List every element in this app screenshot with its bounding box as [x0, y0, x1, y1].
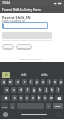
- button[interactable]: ,: [10, 103, 15, 109]
- button[interactable]: Backspace: [55, 95, 63, 101]
- button[interactable]: d: [18, 87, 23, 93]
- staticText: powered by company: [19, 58, 42, 61]
- staticText: a: [6, 88, 8, 92]
- staticText: 10:24: [2, 1, 11, 5]
- button[interactable]: y: [35, 79, 39, 85]
- button[interactable]: q: [1, 79, 6, 85]
- staticText: e: [17, 80, 19, 84]
- button[interactable]: sh: [2, 72, 10, 78]
- button[interactable]: shift in: [2, 44, 14, 50]
- staticText: c: [26, 96, 28, 100]
- staticText: z: [14, 96, 16, 100]
- staticText: ,: [12, 104, 13, 108]
- staticText: b: [38, 96, 40, 100]
- button[interactable]: j: [44, 87, 48, 93]
- staticText: s: [13, 88, 15, 92]
- staticText: n: [44, 96, 46, 100]
- staticText: y: [36, 80, 38, 84]
- button[interactable]: [2, 22, 48, 29]
- button[interactable]: h: [38, 87, 42, 93]
- button[interactable]: z: [12, 95, 17, 101]
- staticText: h: [39, 88, 41, 92]
- button[interactable]: e: [15, 79, 20, 85]
- staticText: update shift: [17, 46, 32, 49]
- button[interactable]: shift: [20, 72, 27, 78]
- staticText: j: [46, 88, 47, 92]
- staticText: shift in: [4, 46, 12, 49]
- button[interactable]: k: [50, 87, 54, 93]
- button[interactable]: Shift: [1, 95, 10, 101]
- staticText: shifts: [41, 73, 48, 77]
- staticText: r: [24, 80, 26, 84]
- button[interactable]: r: [22, 79, 27, 85]
- button[interactable]: a: [4, 87, 9, 93]
- staticText: x: [20, 96, 22, 100]
- button[interactable]: Home: [3, 112, 8, 117]
- button[interactable]: .: [46, 103, 51, 109]
- button[interactable]: v: [31, 95, 35, 101]
- button[interactable]: n: [43, 95, 47, 101]
- staticText: t: [30, 80, 32, 84]
- button[interactable]: Enter: [53, 103, 63, 109]
- staticText: l: [58, 88, 59, 92]
- button[interactable]: p: [59, 79, 63, 85]
- button[interactable]: Parent Shift In Entry Form: [0, 6, 64, 13]
- button[interactable]: b: [37, 95, 41, 101]
- staticText: w: [9, 80, 12, 84]
- button[interactable]: t: [29, 79, 33, 85]
- staticText: Parent Shift In Entry Form: [2, 8, 41, 12]
- button[interactable]: ?123: [1, 103, 8, 109]
- staticText: u: [42, 80, 44, 84]
- button[interactable]: l: [56, 87, 60, 93]
- button[interactable]: shifts: [40, 72, 49, 78]
- staticText: enter: [55, 105, 61, 108]
- button[interactable]: c: [25, 95, 29, 101]
- button[interactable]: u: [41, 79, 45, 85]
- staticText: q: [3, 80, 5, 84]
- staticText: sh: [5, 73, 8, 77]
- staticText: f: [27, 88, 29, 92]
- button[interactable]: m: [49, 95, 53, 101]
- staticText: ?123: [2, 105, 8, 108]
- button[interactable]: update shift: [16, 44, 32, 50]
- staticText: g: [33, 88, 35, 92]
- staticText: p: [60, 80, 62, 84]
- staticText: shift: [21, 73, 27, 77]
- button[interactable]: f: [25, 87, 30, 93]
- staticText: v: [32, 96, 34, 100]
- button[interactable]: o: [53, 79, 57, 85]
- button[interactable]: s: [11, 87, 16, 93]
- staticText: k: [51, 88, 53, 92]
- staticText: m: [50, 96, 53, 100]
- staticText: d: [20, 88, 22, 92]
- button[interactable]: g: [32, 87, 36, 93]
- staticText: i: [49, 80, 50, 84]
- button[interactable]: i: [47, 79, 51, 85]
- staticText: Parent Shift_IN: [2, 15, 31, 20]
- staticText: o: [54, 80, 56, 84]
- button[interactable]: x: [19, 95, 23, 101]
- button[interactable]: w: [8, 79, 13, 85]
- staticText: .: [48, 104, 49, 108]
- staticText: Enter student id: [2, 19, 25, 23]
